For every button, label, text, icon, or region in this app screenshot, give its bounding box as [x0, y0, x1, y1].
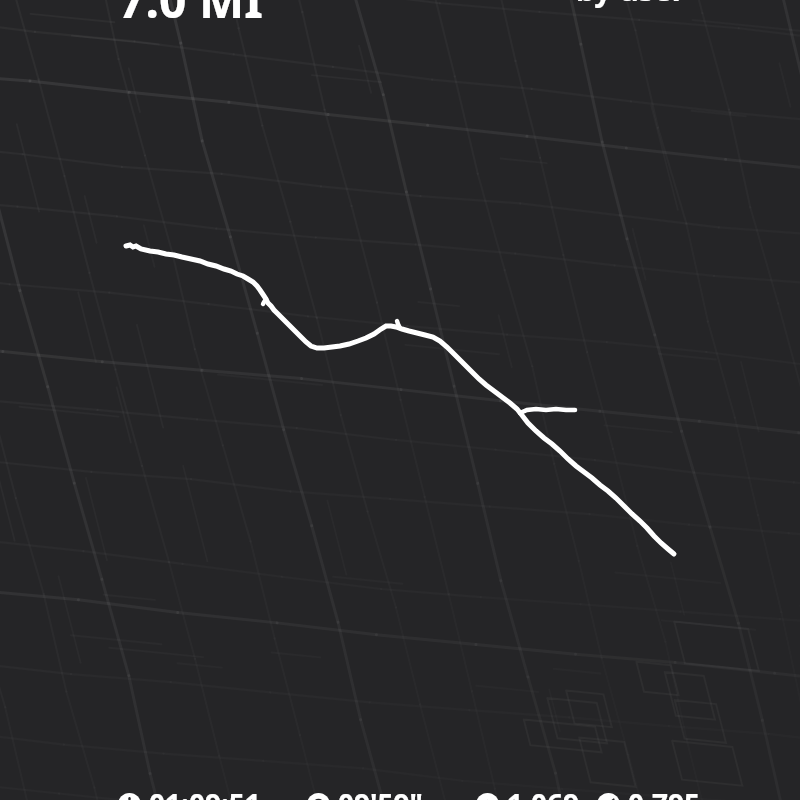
- staticText: 0.795: [628, 785, 700, 800]
- staticText: by user: [576, 0, 686, 10]
- staticText: 7.0 MI: [118, 0, 263, 32]
- staticText: 09'59": [338, 785, 423, 800]
- staticText: 01:09:51: [149, 785, 261, 800]
- button[interactable]: Relative effort: [597, 785, 700, 800]
- button[interactable]: by user: [576, 0, 686, 10]
- button[interactable]: 7.0 MI: [118, 0, 263, 32]
- button[interactable]: Average pace: [307, 785, 423, 800]
- button[interactable]: Moving time: [118, 785, 261, 800]
- button[interactable]: Activity map: [0, 0, 800, 800]
- button[interactable]: Elevation gain: [476, 785, 580, 800]
- staticText: 1,069: [507, 785, 580, 800]
